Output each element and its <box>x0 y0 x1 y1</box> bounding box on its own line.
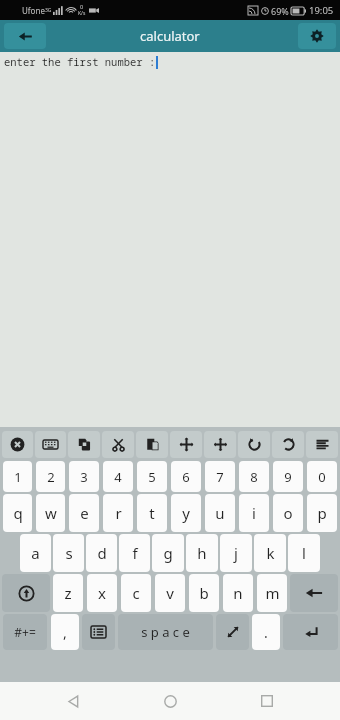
button[interactable]: Cut <box>102 431 134 458</box>
button[interactable]: b <box>189 574 219 612</box>
button[interactable]: 8 <box>239 461 269 492</box>
button[interactable]: n <box>223 574 253 612</box>
button[interactable]: Move <box>170 431 202 458</box>
staticText: y <box>182 503 190 523</box>
button[interactable]: 5 <box>137 461 167 492</box>
staticText: c <box>132 583 140 603</box>
button[interactable]: p <box>307 494 337 532</box>
staticText: h <box>197 543 207 563</box>
button[interactable]: s <box>53 534 84 572</box>
staticText: 0 <box>80 3 84 10</box>
button[interactable]: c <box>121 574 151 612</box>
button[interactable]: Home <box>146 682 194 720</box>
staticText: s <box>65 543 73 563</box>
button[interactable]: Menu <box>306 431 338 458</box>
staticText: l <box>302 543 306 563</box>
button[interactable]: u <box>205 494 235 532</box>
button[interactable]: d <box>86 534 117 572</box>
button[interactable]: i <box>239 494 269 532</box>
staticText: a <box>31 543 40 563</box>
staticText: 4 <box>114 468 122 486</box>
staticText: e <box>80 503 89 523</box>
button[interactable]: z <box>53 574 83 612</box>
staticText: #+= <box>14 624 36 640</box>
button[interactable]: Select <box>204 431 236 458</box>
staticText: 6 <box>182 468 190 486</box>
button[interactable]: Undo <box>238 431 270 458</box>
button[interactable]: 6 <box>171 461 201 492</box>
button[interactable]: Enter <box>283 614 338 650</box>
button[interactable]: Back <box>4 23 46 49</box>
staticText: t <box>149 503 155 523</box>
staticText: o <box>283 503 293 523</box>
staticText: 2 <box>47 468 55 486</box>
staticText: 8 <box>250 468 258 486</box>
button[interactable]: Settings <box>298 23 336 49</box>
button[interactable]: 2 <box>36 461 65 492</box>
button[interactable]: . <box>252 614 280 650</box>
staticText: 3 <box>80 468 88 486</box>
staticText: g <box>163 543 173 563</box>
button[interactable]: v <box>155 574 185 612</box>
button[interactable]: t <box>137 494 167 532</box>
staticText: . <box>264 623 268 642</box>
button[interactable]: 9 <box>273 461 303 492</box>
staticText: K/s <box>78 10 86 17</box>
staticText: j <box>234 543 238 563</box>
staticText: k <box>266 543 275 563</box>
button[interactable]: 7 <box>205 461 235 492</box>
button[interactable]: y <box>171 494 201 532</box>
button[interactable]: e <box>69 494 99 532</box>
button[interactable]: Resize keyboard <box>216 614 249 650</box>
staticText: 3G <box>45 7 52 14</box>
staticText: 5 <box>148 468 156 486</box>
staticText: 7 <box>216 468 224 486</box>
button[interactable]: x <box>87 574 117 612</box>
button[interactable]: q <box>3 494 32 532</box>
button[interactable]: h <box>186 534 218 572</box>
staticText: f <box>132 543 138 563</box>
button[interactable]: Copy <box>68 431 100 458</box>
button[interactable]: 0 <box>307 461 337 492</box>
button[interactable]: s p a c e <box>118 614 213 650</box>
button[interactable]: Backspace <box>290 574 338 612</box>
button[interactable]: Paste <box>136 431 168 458</box>
button[interactable]: Close <box>2 431 33 458</box>
button[interactable]: w <box>36 494 65 532</box>
staticText: z <box>64 583 72 603</box>
button[interactable]: , <box>51 614 79 650</box>
staticText: x <box>98 583 106 603</box>
button[interactable]: l <box>288 534 320 572</box>
staticText: q <box>13 503 23 523</box>
button[interactable]: Recents <box>243 682 291 720</box>
button[interactable]: a <box>20 534 51 572</box>
staticText: w <box>45 503 57 523</box>
staticText: i <box>252 503 256 523</box>
button[interactable]: o <box>273 494 303 532</box>
button[interactable]: f <box>119 534 150 572</box>
staticText: s p a c e <box>141 623 190 641</box>
staticText: p <box>317 503 327 523</box>
button[interactable]: j <box>220 534 252 572</box>
staticText: 0 <box>318 468 326 486</box>
button[interactable]: g <box>152 534 184 572</box>
button[interactable]: Redo <box>272 431 304 458</box>
staticText: 19:05 <box>309 4 334 17</box>
staticText: d <box>97 543 107 563</box>
staticText: Ufone <box>22 5 45 16</box>
button[interactable]: 4 <box>103 461 133 492</box>
button[interactable]: k <box>254 534 286 572</box>
staticText: , <box>63 623 67 642</box>
staticText: v <box>166 583 174 603</box>
button[interactable]: m <box>257 574 287 612</box>
staticText: 1 <box>14 468 22 486</box>
staticText: 69% <box>271 5 289 17</box>
button[interactable]: Keyboard <box>35 431 66 458</box>
button[interactable]: Switch keyboard <box>82 614 115 650</box>
button[interactable]: 1 <box>3 461 32 492</box>
button[interactable]: 3 <box>69 461 99 492</box>
button[interactable]: Back <box>49 682 97 720</box>
button[interactable]: Shift <box>2 574 50 612</box>
button[interactable]: #+= <box>3 614 47 650</box>
button[interactable]: r <box>103 494 133 532</box>
